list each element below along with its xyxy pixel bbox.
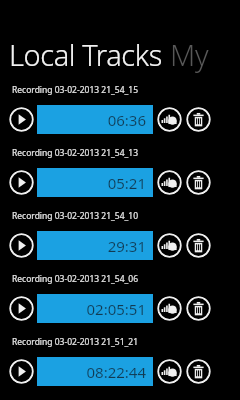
button[interactable]: Upload to SoundCloud xyxy=(157,359,182,384)
button[interactable]: Play xyxy=(9,107,34,132)
button[interactable]: Play xyxy=(9,296,34,321)
button[interactable]: 29:31 xyxy=(37,231,153,260)
button[interactable]: 02:05:51 xyxy=(37,294,153,323)
button[interactable]: Delete xyxy=(186,233,211,258)
button[interactable]: My xyxy=(170,35,209,74)
staticText: Recording 03-02-2013 21_51_21 xyxy=(12,336,139,348)
button[interactable]: Delete xyxy=(186,107,211,132)
button[interactable]: Local Tracks xyxy=(9,35,162,74)
button[interactable]: Play xyxy=(9,233,34,258)
button[interactable]: Delete xyxy=(186,359,211,384)
button[interactable]: Delete xyxy=(186,170,211,195)
button[interactable]: Upload to SoundCloud xyxy=(157,296,182,321)
staticText: 06:36 xyxy=(107,110,146,130)
button[interactable]: Play xyxy=(9,170,34,195)
staticText: Recording 03-02-2013 21_54_06 xyxy=(12,273,139,285)
staticText: My xyxy=(170,35,209,74)
staticText: Local Tracks xyxy=(9,35,162,74)
button[interactable]: Upload to SoundCloud xyxy=(157,170,182,195)
staticText: Recording 03-02-2013 21_54_13 xyxy=(12,147,139,159)
staticText: Recording 03-02-2013 21_54_15 xyxy=(12,84,139,96)
staticText: 02:05:51 xyxy=(86,299,146,319)
button[interactable]: Play xyxy=(9,359,34,384)
staticText: Recording 03-02-2013 21_54_10 xyxy=(12,210,139,222)
button[interactable]: Upload to SoundCloud xyxy=(157,107,182,132)
button[interactable]: 05:21 xyxy=(37,168,153,197)
button[interactable]: 08:22:44 xyxy=(37,357,153,386)
button[interactable]: Delete xyxy=(186,296,211,321)
button[interactable]: 06:36 xyxy=(37,105,153,134)
staticText: 05:21 xyxy=(107,173,146,193)
staticText: 08:22:44 xyxy=(86,362,146,382)
button[interactable]: Upload to SoundCloud xyxy=(157,233,182,258)
staticText: 29:31 xyxy=(107,236,146,256)
